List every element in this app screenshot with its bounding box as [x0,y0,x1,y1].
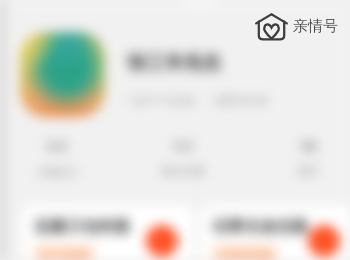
button[interactable]: 3.5 [148,136,218,178]
button[interactable] [20,32,105,117]
staticText: 9元10GB起 [39,248,90,260]
other: 亲情号 [255,13,288,40]
staticText: 58 [300,136,317,155]
staticText: 通话 [297,164,319,178]
staticText: 张三丰先生 [127,51,222,75]
staticText: 亲情号 [293,17,338,36]
staticText: 3.5 [173,136,193,155]
staticText: 余额(元) [37,164,77,179]
staticText: 0.0 [47,136,67,155]
button[interactable]: 流量日包特惠 [22,205,193,260]
staticText: 立享9折优惠 [217,248,273,260]
staticText: 流量日包特惠 [34,217,130,237]
button[interactable]: 0.0 [22,136,92,179]
button[interactable]: 58 [273,136,343,178]
button[interactable]: 亲情号 [255,13,338,40]
staticText: 话费充值优惠 [212,217,308,237]
button[interactable]: 话费充值优惠 [200,205,350,260]
